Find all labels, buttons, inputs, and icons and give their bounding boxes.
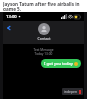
button[interactable]: Watermark xyxy=(64,89,81,94)
staticText: indepen xyxy=(64,89,78,94)
staticText: 13:00 xyxy=(6,14,17,20)
staticText: Jayson Tatum after five airballs in game… xyxy=(3,1,84,11)
staticText: Contact xyxy=(37,36,51,41)
button[interactable]: Back xyxy=(4,23,13,32)
staticText: Text Message Today 13:00 xyxy=(6,48,81,56)
staticText: I got you today xyxy=(44,61,73,66)
button[interactable]: Contact xyxy=(37,23,51,41)
button[interactable]: I got you today xyxy=(41,59,81,68)
